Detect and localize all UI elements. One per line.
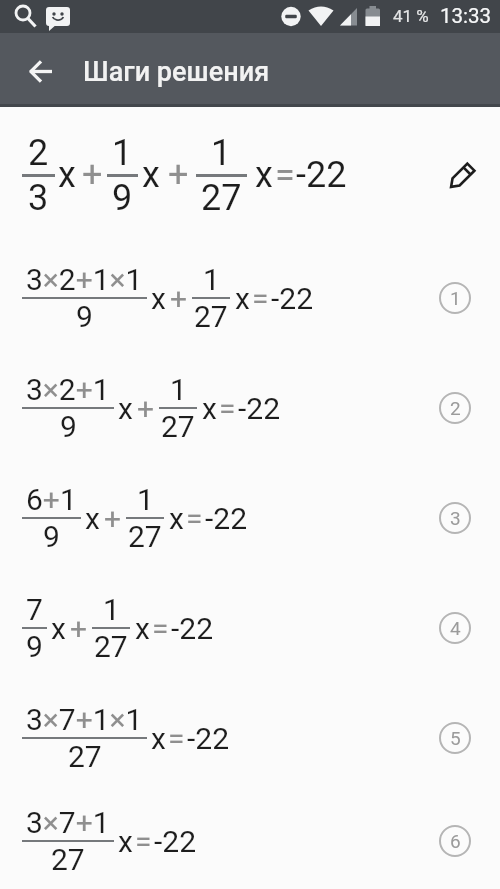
button[interactable]: 2: [439, 392, 471, 424]
staticText: 3×7+1×1: [26, 702, 143, 737]
staticText: =: [135, 824, 152, 859]
button[interactable]: 5: [439, 722, 471, 754]
staticText: 27: [201, 177, 242, 219]
staticText: 3: [450, 507, 461, 529]
button[interactable]: 3: [439, 502, 471, 534]
staticText: =: [219, 391, 236, 426]
staticText: x: [169, 501, 184, 536]
staticText: 27: [94, 629, 128, 664]
staticText: 3×2+1: [26, 372, 110, 407]
staticText: +: [82, 154, 103, 196]
staticText: -22: [296, 154, 347, 196]
staticText: +: [168, 154, 189, 196]
button[interactable]: 6+1: [0, 463, 500, 573]
staticText: 7: [26, 592, 43, 627]
button[interactable]: 3×7+1: [0, 793, 500, 889]
staticText: +: [137, 391, 155, 426]
staticText: x: [255, 154, 273, 196]
staticText: x: [135, 611, 150, 646]
staticText: -22: [171, 611, 214, 646]
staticText: 27: [161, 409, 195, 444]
staticText: 1: [137, 482, 154, 517]
button[interactable]: 4: [439, 612, 471, 644]
staticText: 41 %: [393, 6, 429, 26]
staticText: 27: [68, 739, 102, 774]
staticText: 1: [203, 262, 220, 297]
staticText: +: [104, 501, 122, 536]
staticText: 9: [112, 177, 133, 219]
staticText: 1: [211, 132, 232, 174]
button[interactable]: 1: [439, 282, 471, 314]
staticText: 9: [26, 629, 43, 664]
staticText: -22: [154, 824, 197, 859]
staticText: Шаги решения: [83, 56, 270, 88]
staticText: 4: [450, 617, 461, 639]
button[interactable]: 7: [0, 573, 500, 683]
staticText: x: [118, 824, 133, 859]
staticText: -22: [238, 391, 281, 426]
staticText: +: [170, 281, 188, 316]
staticText: -22: [205, 501, 248, 536]
staticText: =: [186, 501, 203, 536]
staticText: 13:33: [440, 4, 492, 28]
staticText: 1: [450, 287, 461, 309]
button[interactable]: 3×2+1×1: [0, 243, 500, 353]
staticText: 6: [450, 830, 461, 852]
staticText: +: [70, 611, 88, 646]
staticText: 5: [450, 727, 461, 749]
staticText: =: [168, 721, 185, 756]
staticText: 2: [28, 132, 49, 174]
staticText: x: [51, 611, 66, 646]
button[interactable]: 3×2+1: [0, 353, 500, 463]
button[interactable]: 3×7+1×1: [0, 683, 500, 793]
staticText: 27: [128, 519, 162, 554]
staticText: x: [118, 391, 133, 426]
staticText: 3: [28, 177, 49, 219]
staticText: 27: [51, 842, 85, 877]
staticText: =: [252, 281, 269, 316]
staticText: 9: [60, 409, 77, 444]
staticText: -22: [271, 281, 314, 316]
staticText: 9: [43, 519, 60, 554]
button[interactable]: [448, 164, 474, 190]
staticText: 27: [194, 299, 228, 334]
button[interactable]: [0, 42, 56, 98]
staticText: x: [142, 154, 160, 196]
button[interactable]: 6: [439, 825, 471, 857]
staticText: x: [235, 281, 250, 316]
staticText: x: [202, 391, 217, 426]
staticText: 3×2+1×1: [26, 262, 143, 297]
staticText: =: [152, 611, 169, 646]
staticText: x: [85, 501, 100, 536]
staticText: 1: [112, 132, 133, 174]
staticText: -22: [187, 721, 230, 756]
staticText: x: [58, 154, 76, 196]
staticText: 1: [170, 372, 187, 407]
staticText: x: [151, 721, 166, 756]
staticText: 6+1: [26, 482, 77, 517]
staticText: 2: [450, 397, 461, 419]
staticText: 3×7+1: [26, 805, 110, 840]
staticText: x: [151, 281, 166, 316]
staticText: 1: [103, 592, 120, 627]
button[interactable]: 2: [0, 107, 500, 243]
staticText: =: [275, 154, 295, 196]
staticText: 9: [76, 299, 93, 334]
